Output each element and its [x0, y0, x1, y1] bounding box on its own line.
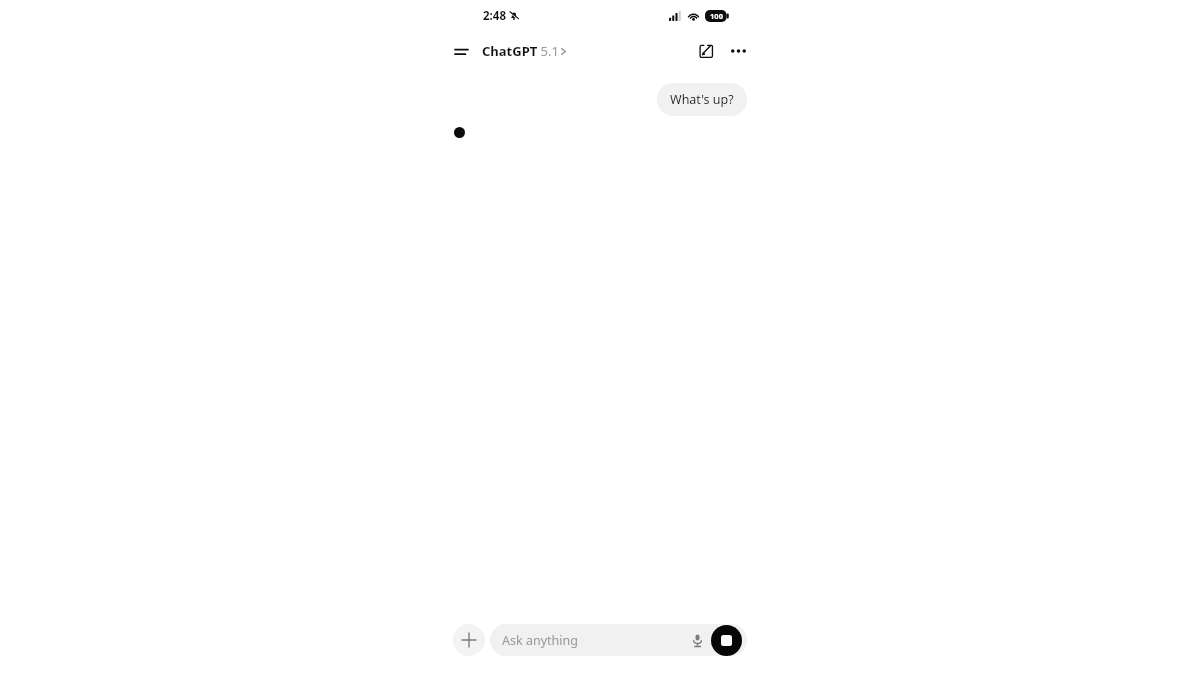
- staticText: 100: [710, 11, 723, 21]
- staticText: ChatGPT 5.1: [482, 42, 559, 60]
- button[interactable]: Ask anything: [490, 624, 747, 656]
- button[interactable]: New chat: [692, 37, 720, 65]
- button[interactable]: Stop generating: [711, 625, 742, 656]
- button[interactable]: Open sidebar: [448, 38, 474, 64]
- staticText: What's up?: [670, 91, 734, 108]
- staticText: Ask anything: [502, 632, 687, 649]
- button[interactable]: Add attachment: [453, 624, 485, 656]
- button[interactable]: Voice input: [687, 630, 707, 650]
- button[interactable]: What's up?: [657, 83, 747, 116]
- button[interactable]: ChatGPT 5.1: [480, 39, 568, 63]
- staticText: 2:48: [483, 8, 506, 24]
- button[interactable]: More options: [724, 37, 752, 65]
